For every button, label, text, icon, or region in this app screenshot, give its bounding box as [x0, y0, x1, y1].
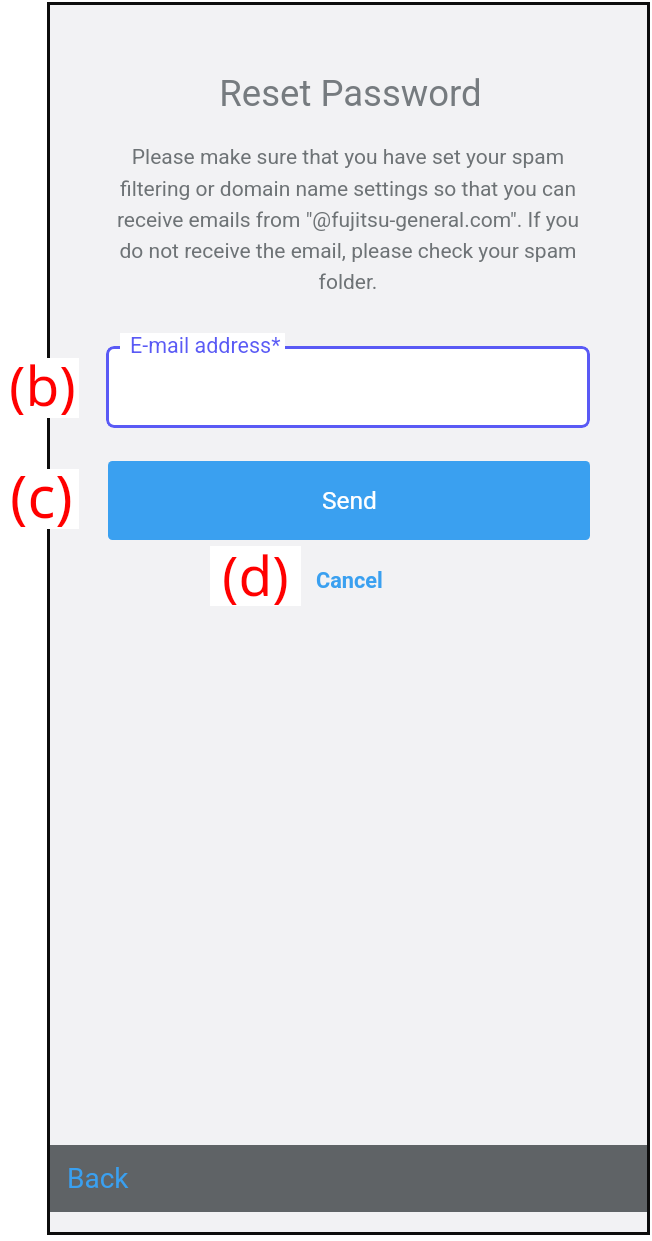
staticText: (d) [222, 537, 289, 612]
button[interactable]: Send [108, 461, 590, 540]
staticText: E-mail address* [130, 333, 281, 358]
button[interactable]: Back [50, 1145, 146, 1212]
staticText: Reset Password [52, 72, 649, 115]
button[interactable]: Cancel [300, 553, 399, 608]
button[interactable]: E-mail address [106, 346, 590, 428]
staticText: (c) [10, 456, 73, 535]
staticText: Cancel [316, 568, 383, 593]
staticText: Send [322, 486, 377, 515]
staticText: Please make sure that you have set your … [105, 145, 591, 294]
staticText: (b) [9, 347, 76, 422]
staticText: Back [67, 1162, 129, 1195]
